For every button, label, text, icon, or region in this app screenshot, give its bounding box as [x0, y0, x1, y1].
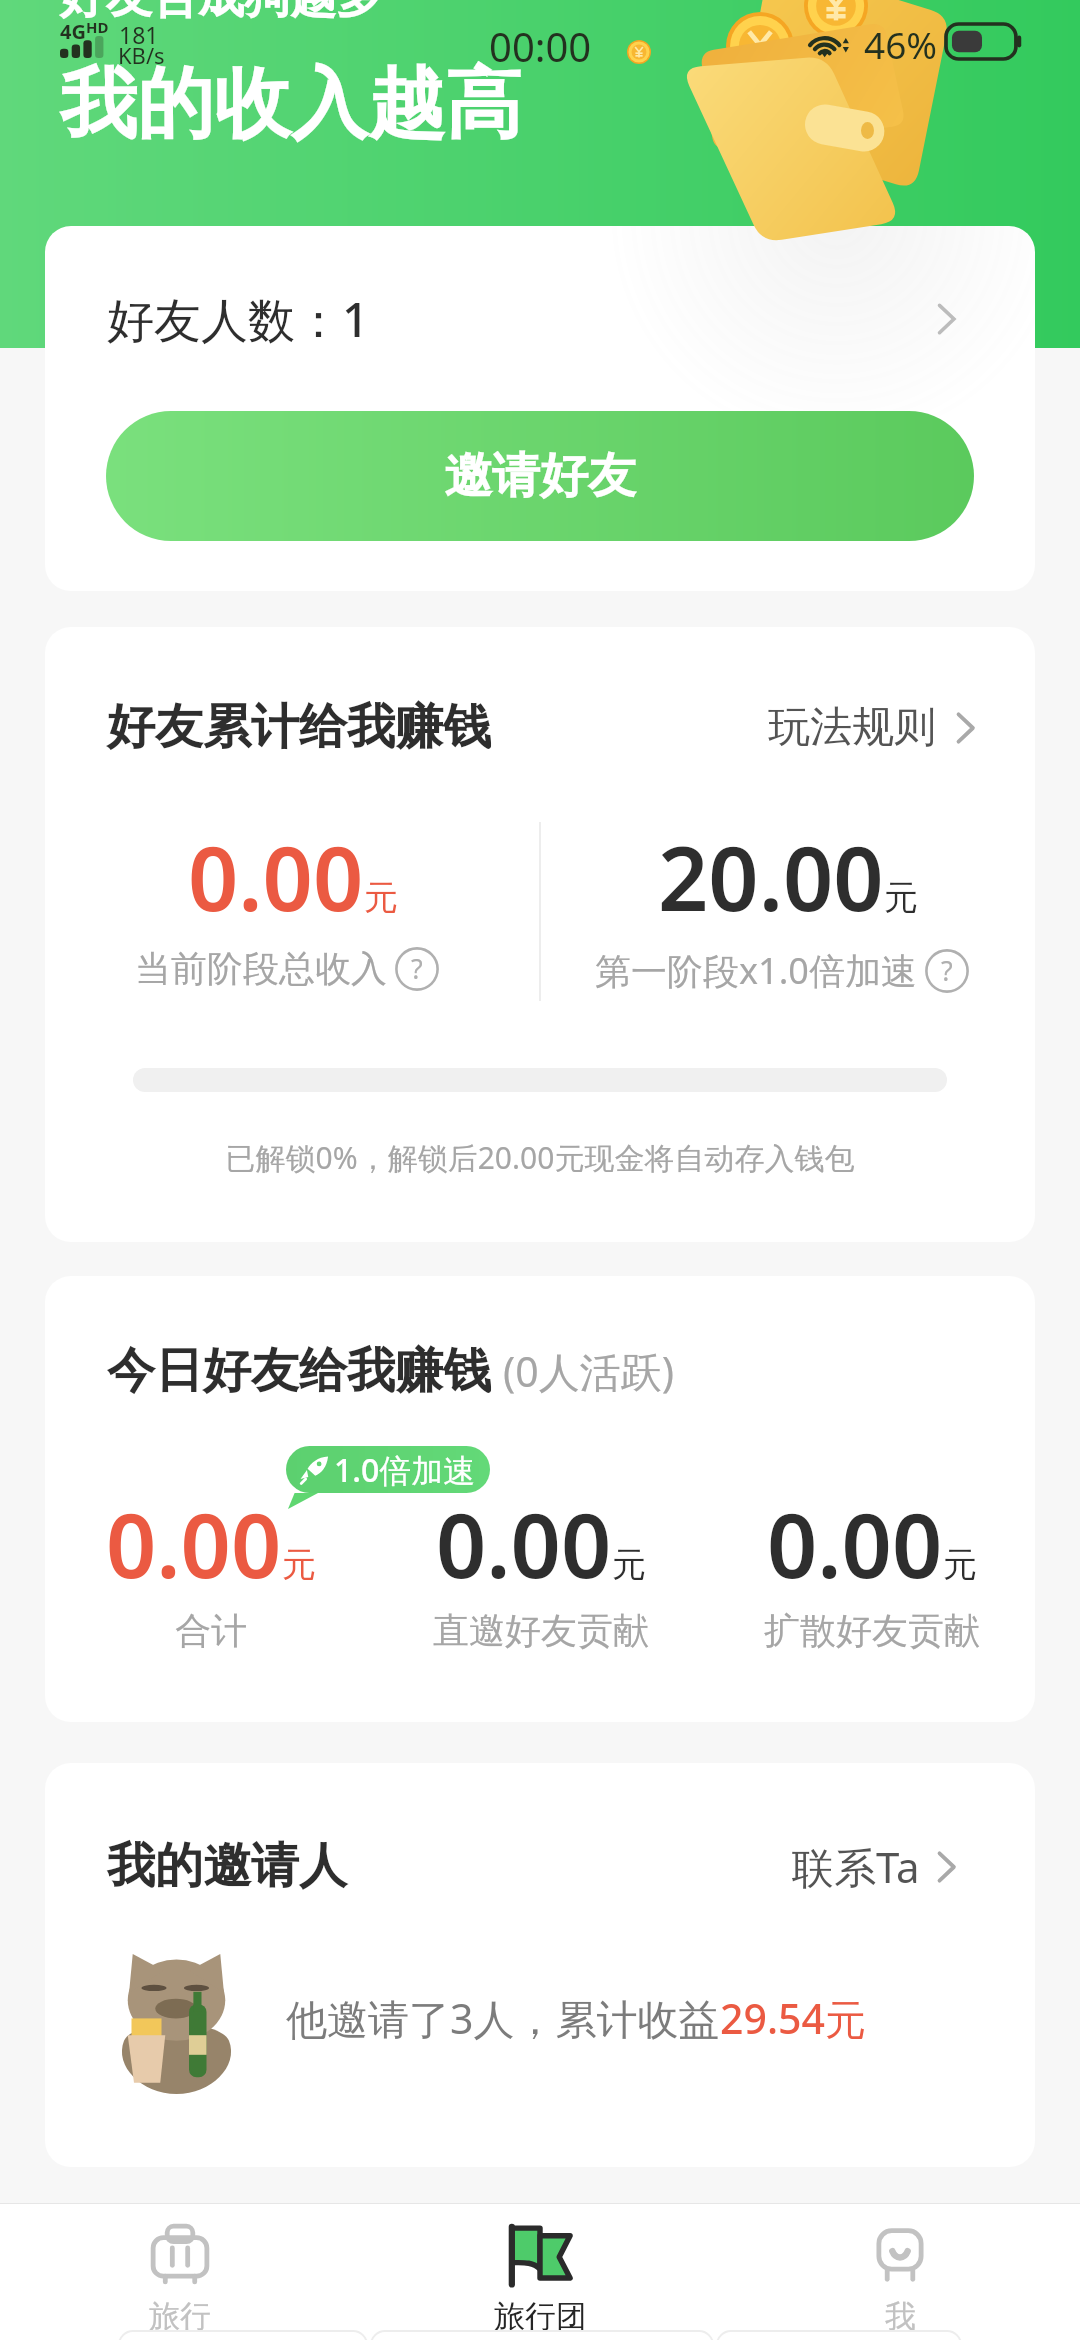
button[interactable]: 好友人数：1: [45, 226, 1035, 411]
other: Travel group: [508, 2223, 572, 2287]
button[interactable]: Me: [720, 2203, 1080, 2340]
staticText: 元: [884, 876, 918, 919]
staticText: ?: [941, 952, 953, 989]
staticText: KB/s: [118, 40, 165, 70]
staticText: 0.00: [767, 1484, 943, 1604]
staticText: 46%: [864, 19, 938, 69]
staticText: 1.0倍加速: [334, 1448, 476, 1492]
staticText: 他邀请了3人，累计收益: [286, 1990, 720, 2046]
staticText: 0.00: [106, 1484, 282, 1604]
staticText: 4G: [60, 18, 86, 45]
staticText: 好友人数：1: [107, 287, 928, 351]
staticText: 0.00: [436, 1484, 612, 1604]
staticText: 181: [119, 19, 159, 50]
staticText: ?: [411, 950, 423, 987]
staticText: 29.54元: [720, 1990, 866, 2046]
other: Travel: [148, 2223, 212, 2287]
staticText: 当前阶段总收入: [135, 946, 387, 991]
staticText: 玩法规则: [768, 701, 936, 754]
staticText: 元: [364, 876, 398, 919]
staticText: 00:00: [489, 19, 592, 73]
button[interactable]: 玩法规则: [768, 701, 983, 754]
button[interactable]: Travel group: [360, 2203, 720, 2340]
staticText: 我的收入越高: [60, 56, 522, 153]
staticText: HD: [86, 17, 109, 37]
staticText: 合计: [175, 1608, 247, 1653]
staticText: 邀请好友: [444, 446, 636, 506]
staticText: 旅行团: [494, 2297, 587, 2336]
staticText: 好友合成狗越多: [60, 0, 382, 26]
button[interactable]: 联系Ta: [792, 1838, 964, 1895]
staticText: 旅行: [149, 2297, 211, 2336]
staticText: (0人活跃): [503, 1343, 675, 1399]
staticText: 第一阶段x1.0倍加速: [595, 946, 917, 995]
staticText: 今日好友给我赚钱: [107, 1341, 491, 1401]
staticText: 元: [282, 1543, 316, 1586]
staticText: 好友累计给我赚钱: [107, 697, 768, 757]
staticText: 联系Ta: [792, 1838, 920, 1895]
staticText: 直邀好友贡献: [433, 1608, 649, 1653]
staticText: 元: [943, 1543, 977, 1586]
staticText: 20.00: [658, 817, 884, 937]
button[interactable]: Travel: [0, 2203, 360, 2340]
staticText: 已解锁0%，解锁后20.00元现金将自动存入钱包: [45, 1137, 1035, 1178]
staticText: 我的邀请人: [107, 1836, 792, 1896]
staticText: 0.00: [188, 817, 364, 937]
other: Me: [868, 2223, 932, 2287]
button[interactable]: 邀请好友: [106, 411, 974, 541]
staticText: 我: [885, 2297, 916, 2336]
staticText: 元: [612, 1543, 646, 1586]
staticText: 扩散好友贡献: [764, 1608, 980, 1653]
